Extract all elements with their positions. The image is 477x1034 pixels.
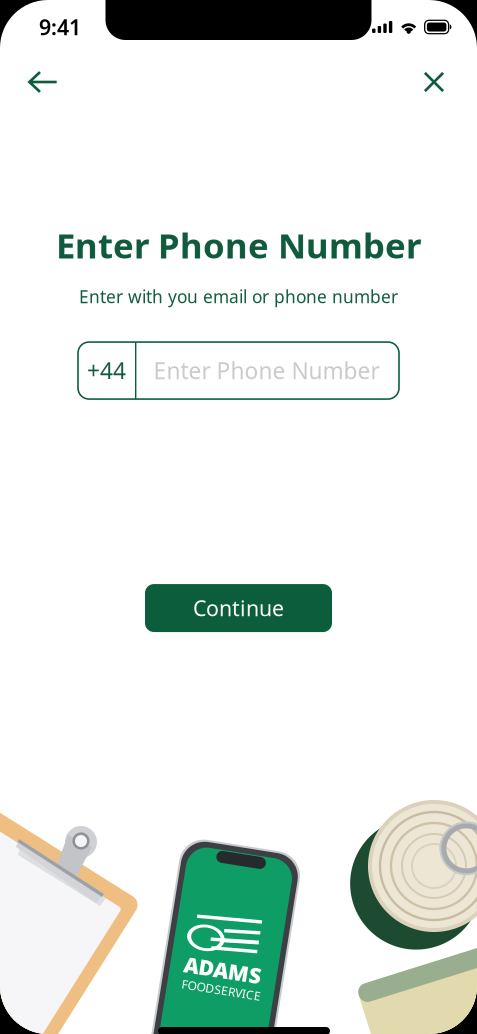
staticText: Enter with you email or phone number [79,285,398,308]
staticText: FOODSERVICE [184,982,264,998]
button[interactable]: Close [403,54,465,110]
staticText: Enter Phone Number [56,222,421,268]
staticText: Continue [193,594,284,622]
button[interactable]: Continue [145,584,332,632]
staticText: ADAMS [183,956,261,984]
staticText: +44 [87,355,126,386]
button[interactable]: Back [12,54,74,110]
staticText: Enter Phone Number [153,355,379,386]
staticText: 9:41 [39,13,81,41]
